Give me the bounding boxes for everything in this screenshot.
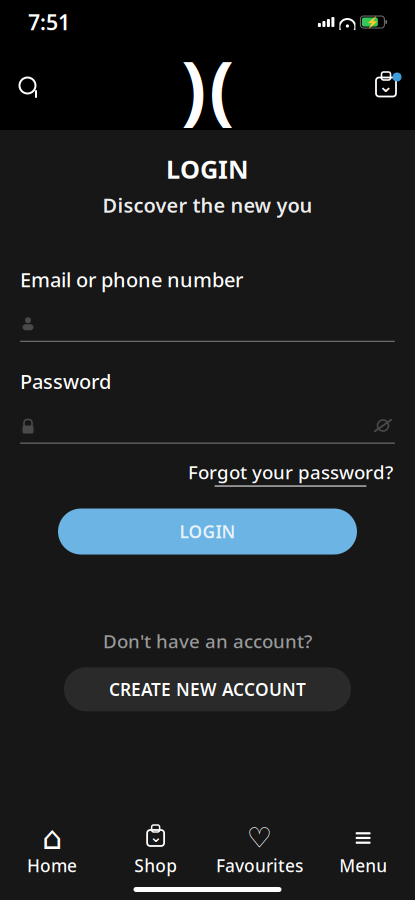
staticText: ⌄: [378, 76, 393, 96]
button[interactable]: Cart: [363, 59, 409, 115]
button[interactable]: ⌄: [104, 826, 208, 878]
staticText: Discover the new you: [102, 192, 312, 218]
staticText: LOGIN: [166, 152, 249, 186]
button[interactable]: LOGIN: [58, 508, 357, 554]
staticText: LOGIN: [179, 520, 235, 543]
button[interactable]: ♡: [207, 826, 311, 878]
staticText: ⌂: [42, 820, 62, 856]
button[interactable]: Menu: [311, 826, 415, 878]
button[interactable]: Search: [6, 59, 52, 115]
staticText: Favourites: [216, 854, 303, 877]
staticText: Shop: [134, 854, 177, 877]
staticText: (: [209, 37, 234, 137]
button[interactable]: CREATE NEW ACCOUNT: [64, 667, 351, 711]
staticText: ): [181, 37, 206, 137]
staticText: Email or phone number: [20, 266, 243, 293]
button[interactable]: Forgot your password?: [188, 456, 393, 490]
staticText: Don't have an account?: [103, 628, 312, 653]
staticText: Forgot your password?: [188, 460, 393, 484]
button[interactable]: ⌂: [0, 826, 104, 878]
staticText: ⚡: [366, 16, 379, 28]
staticText: 7:51: [28, 8, 70, 36]
staticText: ⌄: [150, 829, 162, 845]
staticText: ♡: [247, 822, 272, 854]
staticText: Home: [27, 854, 77, 877]
staticText: Menu: [339, 854, 387, 877]
staticText: CREATE NEW ACCOUNT: [109, 678, 306, 701]
staticText: Password: [20, 368, 111, 395]
